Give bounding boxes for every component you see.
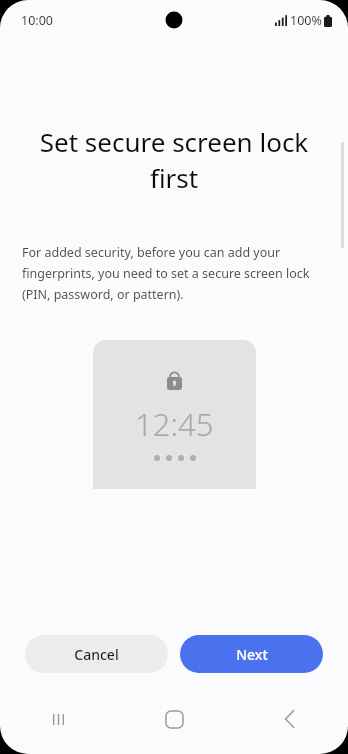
button[interactable]: Recent apps [0,697,116,741]
staticText: Cancel [74,645,119,664]
staticText: For added security, before you can add y… [22,244,320,303]
button[interactable]: Home [116,697,232,741]
button[interactable]: Back [232,697,348,741]
button[interactable]: Next [180,635,323,673]
staticText: Next [236,645,268,664]
button[interactable]: Cancel [25,635,168,673]
staticText: 12:45 [135,403,214,445]
staticText: 100% [290,12,322,29]
staticText: 10:00 [21,12,53,29]
staticText: Set secure screen lock first [18,124,330,196]
